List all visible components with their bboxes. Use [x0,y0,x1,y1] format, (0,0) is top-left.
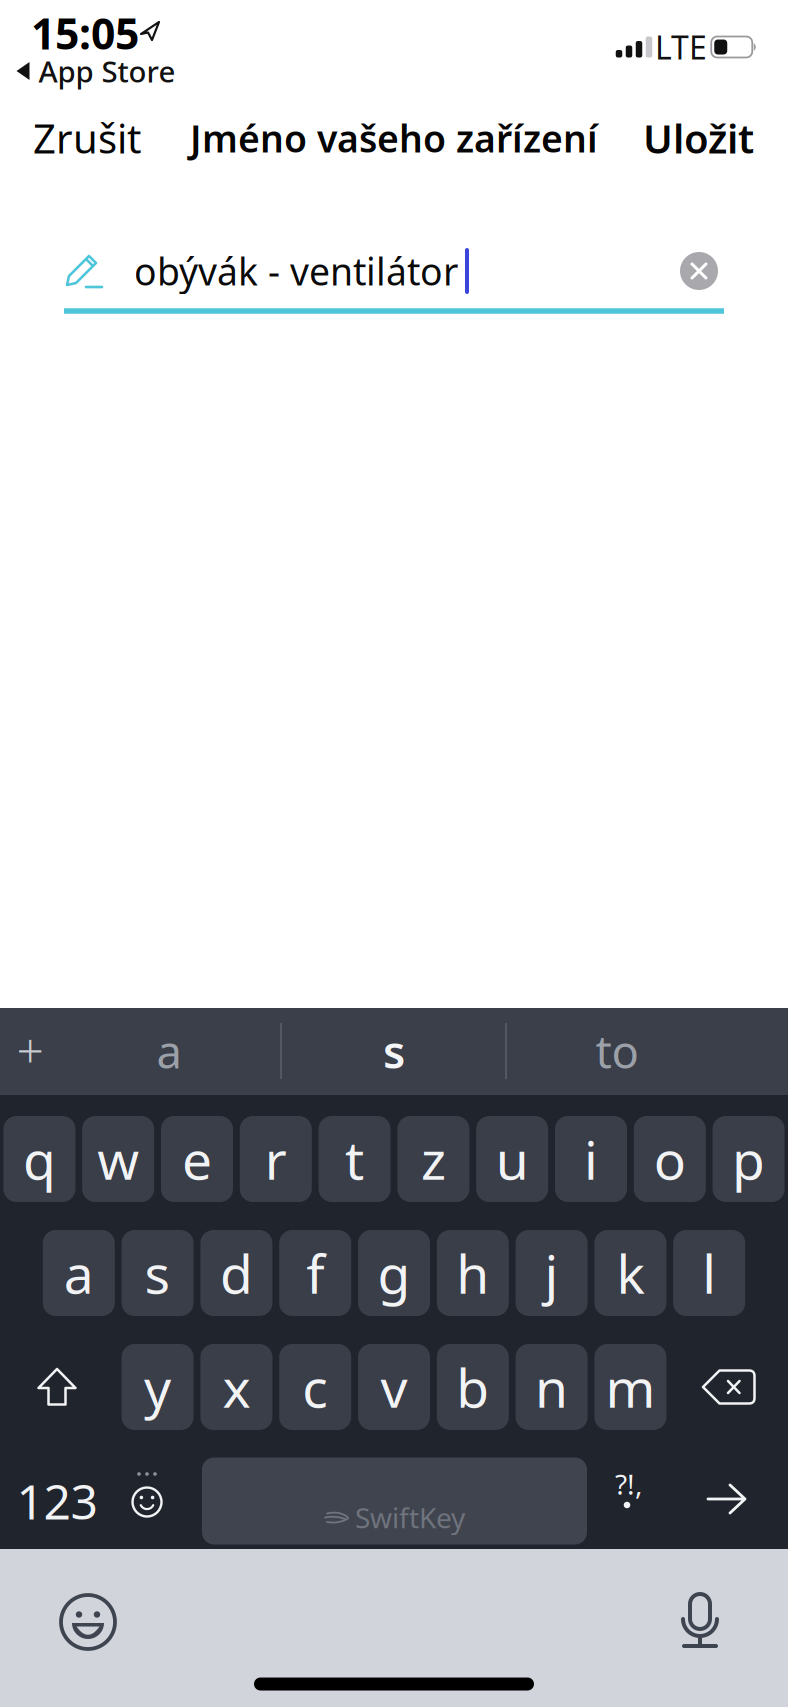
button[interactable]: c [279,1344,351,1430]
button[interactable]: d [200,1230,272,1316]
staticText: 15:05 [31,5,139,61]
button[interactable]: l [673,1230,745,1316]
staticText: x [222,1352,250,1422]
button[interactable]: v [358,1344,430,1430]
staticText: r [265,1124,287,1194]
staticText: v [380,1352,407,1422]
button[interactable] [125,1466,169,1524]
button[interactable]: u [476,1116,548,1202]
staticText: obývák - ventilátor [134,246,458,296]
staticText: LTE [655,26,707,68]
staticText: SwiftKey [355,1499,465,1536]
staticText: q [23,1124,56,1194]
button[interactable]: s [383,1021,405,1081]
button[interactable]: t [319,1116,391,1202]
staticText: s [145,1238,171,1308]
button[interactable] [680,252,718,290]
staticText: i [584,1124,598,1194]
button[interactable]: s [122,1230,194,1316]
button[interactable]: z [397,1116,469,1202]
staticText: d [220,1238,253,1308]
staticText: h [456,1238,489,1308]
button[interactable]: obývák - ventilátor [64,235,724,307]
button[interactable]: Zrušit [33,113,233,163]
staticText: + [16,1018,43,1082]
staticText: Jméno vašeho zařízení [190,113,598,163]
button[interactable] [678,1591,722,1651]
staticText: k [616,1238,644,1308]
button[interactable]: w [82,1116,154,1202]
button[interactable]: r [240,1116,312,1202]
button[interactable]: n [516,1344,588,1430]
button[interactable]: y [122,1344,194,1430]
staticText: b [456,1352,489,1422]
button[interactable]: h [437,1230,509,1316]
button[interactable]: e [161,1116,233,1202]
button[interactable] [706,1481,748,1517]
button[interactable] [36,1367,78,1407]
staticText: a [64,1238,94,1308]
button[interactable]: m [594,1344,666,1430]
staticText: p [732,1124,765,1194]
staticText: u [496,1124,529,1194]
button[interactable] [701,1367,757,1407]
button[interactable]: i [555,1116,627,1202]
staticText: o [654,1124,686,1194]
button[interactable]: SwiftKey [202,1457,587,1544]
staticText: a [156,1021,181,1081]
staticText: z [421,1124,446,1194]
staticText: 123 [16,1469,97,1533]
button[interactable]: App Store [16,51,175,90]
button[interactable]: to [595,1021,638,1081]
staticText: e [182,1124,212,1194]
button[interactable]: k [594,1230,666,1316]
button[interactable]: j [516,1230,588,1316]
staticText: Zrušit [33,111,141,164]
staticText: t [345,1124,364,1194]
staticText: m [605,1352,655,1422]
staticText: ?!, [615,1465,643,1503]
staticText: g [377,1238,410,1308]
staticText: to [595,1021,638,1081]
button[interactable]: q [3,1116,75,1202]
staticText: w [97,1124,139,1194]
button[interactable]: a [43,1230,115,1316]
staticText: l [702,1238,716,1308]
button[interactable]: 123 [16,1469,97,1533]
button[interactable]: g [358,1230,430,1316]
button[interactable]: x [200,1344,272,1430]
button[interactable]: b [437,1344,509,1430]
button[interactable]: Uložit [554,113,754,163]
staticText: j [545,1238,559,1308]
staticText: f [306,1238,324,1308]
button[interactable]: p [713,1116,785,1202]
staticText: Uložit [643,111,754,164]
button[interactable]: f [279,1230,351,1316]
button[interactable]: ?!, [603,1472,653,1516]
button[interactable]: a [156,1021,181,1081]
staticText: y [144,1352,171,1422]
staticText: s [383,1021,405,1081]
button[interactable]: + [16,1018,43,1082]
button[interactable]: o [634,1116,706,1202]
staticText: n [535,1352,568,1422]
staticText: c [302,1352,328,1422]
button[interactable] [58,1592,118,1652]
staticText: App Store [38,51,175,90]
